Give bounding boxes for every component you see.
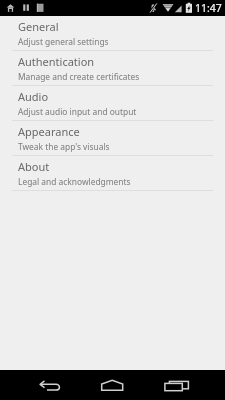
button[interactable]: Appearance	[0, 121, 225, 156]
button[interactable]: Recent apps	[162, 370, 191, 400]
staticText: General	[18, 19, 59, 34]
staticText: Adjust general settings	[18, 36, 109, 47]
staticText: Tweak the app's visuals	[18, 141, 110, 152]
button[interactable]: General	[0, 16, 225, 51]
button[interactable]: Home	[98, 370, 127, 400]
staticText: Appearance	[18, 124, 80, 139]
button[interactable]: Back	[36, 370, 64, 400]
staticText: 11:47	[195, 1, 222, 15]
staticText: Adjust audio input and output	[18, 106, 137, 117]
button[interactable]: Audio	[0, 86, 225, 121]
staticText: About	[18, 159, 50, 174]
staticText: Manage and create certificates	[18, 71, 140, 82]
button[interactable]: Authentication	[0, 51, 225, 86]
staticText: Audio	[18, 89, 49, 104]
staticText: Authentication	[18, 54, 95, 69]
staticText: Legal and acknowledgments	[18, 176, 131, 187]
button[interactable]: About	[0, 156, 225, 191]
